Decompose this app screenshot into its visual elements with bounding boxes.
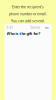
staticText: Save <box>44 26 49 29</box>
staticText: phone number or email. <box>9 11 47 16</box>
staticText: Delete <box>30 26 40 29</box>
button[interactable]: Save <box>44 26 49 29</box>
staticText: Who is the gift for? <box>6 31 40 36</box>
button[interactable]: Delete <box>30 26 40 29</box>
staticText: 9:41 <box>6 26 13 29</box>
staticText: You can add several. <box>11 18 45 23</box>
staticText: Enter the recipient's <box>12 5 44 9</box>
